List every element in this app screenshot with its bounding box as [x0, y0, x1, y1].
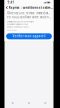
button[interactable]: Verifier mon appareil [6, 33, 52, 39]
staticText: en nous confiant votre ancien appareil. [7, 15, 51, 19]
staticText: 9:41 [7, 1, 14, 4]
button[interactable]: Panier [21, 100, 37, 106]
staticText: Verifier mon appareil [12, 34, 45, 38]
button[interactable]: Compte [37, 100, 53, 106]
staticText: Remboursement sous 15 jours [7, 26, 29, 28]
staticText: Expedition gratuite et securisee [7, 23, 28, 25]
staticText: Estimation de la valeur de reprise en li… [7, 21, 34, 22]
button[interactable]: Boutique [4, 100, 21, 106]
staticText: Reprise : conditions et estimation [9, 6, 53, 9]
button[interactable]: En savoir plus [7, 28, 51, 31]
button[interactable]: Retour [4, 5, 9, 10]
staticText: En savoir plus [7, 29, 17, 31]
staticText: Obtenez une remise immediate sur votre n… [7, 11, 51, 15]
